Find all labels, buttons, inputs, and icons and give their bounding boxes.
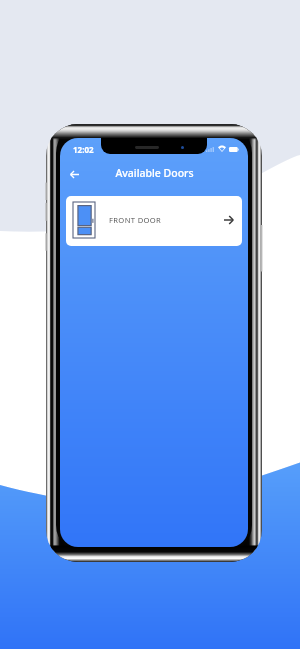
staticText: FRONT DOOR xyxy=(109,215,162,225)
staticText: Available Doors xyxy=(115,166,194,180)
button[interactable]: Back xyxy=(64,164,84,184)
button[interactable]: FRONT DOOR xyxy=(66,196,242,246)
staticText: 12:02 xyxy=(73,144,94,155)
